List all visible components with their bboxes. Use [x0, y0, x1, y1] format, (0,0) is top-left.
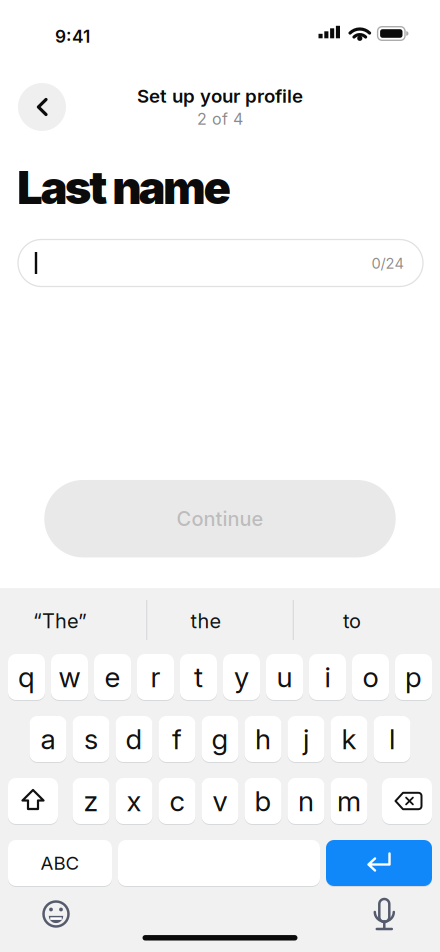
button[interactable]: i [309, 653, 346, 701]
staticText: u [276, 660, 292, 693]
staticText: n [298, 784, 314, 817]
button[interactable]: u [266, 653, 303, 701]
staticText: a [40, 722, 55, 755]
button[interactable]: the [136, 598, 276, 644]
staticText: Continue [176, 507, 263, 530]
button[interactable]: z [72, 777, 109, 825]
staticText: b [254, 784, 271, 817]
staticText: k [341, 722, 356, 755]
staticText: v [212, 784, 227, 817]
button[interactable]: ABC [8, 839, 112, 887]
staticText: p [405, 660, 422, 693]
button[interactable]: w [51, 653, 88, 701]
staticText: e [104, 660, 120, 693]
staticText: name [112, 161, 230, 214]
button[interactable]: d [115, 715, 152, 763]
staticText: 9:41 [55, 26, 90, 47]
staticText: to [343, 609, 361, 633]
button[interactable]: l [373, 715, 410, 763]
button[interactable]: n [287, 777, 324, 825]
button[interactable]: f [158, 715, 195, 763]
staticText: q [18, 660, 35, 693]
button[interactable]: o [352, 653, 389, 701]
staticText: g [211, 722, 228, 755]
button[interactable]: to [282, 598, 422, 644]
staticText: m [337, 784, 361, 817]
staticText: l [389, 722, 395, 755]
button[interactable]: m [330, 777, 367, 825]
button[interactable]: Dictate [367, 897, 401, 931]
staticText: 2 of 4 [197, 110, 243, 128]
button[interactable]: a [29, 715, 66, 763]
button[interactable]: c [158, 777, 195, 825]
staticText: “The” [33, 609, 87, 633]
button[interactable]: g [201, 715, 238, 763]
button[interactable]: Shift [8, 777, 58, 825]
staticText: the [190, 609, 221, 633]
button[interactable]: r [137, 653, 174, 701]
button[interactable]: Continue [44, 480, 396, 557]
staticText: f [172, 722, 182, 755]
staticText: i [324, 660, 330, 693]
staticText: c [169, 784, 184, 817]
button[interactable]: space [118, 839, 320, 887]
staticText: w [58, 660, 80, 693]
staticText: j [303, 722, 309, 755]
button[interactable]: p [395, 653, 432, 701]
staticText: y [234, 660, 249, 693]
button[interactable]: Emoji [40, 898, 71, 929]
button[interactable]: t [180, 653, 217, 701]
button[interactable]: x [115, 777, 152, 825]
button[interactable]: k [330, 715, 367, 763]
staticText: z [83, 784, 98, 817]
staticText: Set up your profile [137, 85, 303, 107]
staticText: t [194, 660, 203, 693]
button[interactable]: h [244, 715, 281, 763]
button[interactable]: Back [18, 83, 66, 131]
staticText: r [150, 660, 160, 693]
button[interactable]: e [94, 653, 131, 701]
button[interactable]: v [201, 777, 238, 825]
button[interactable]: “The” [0, 598, 130, 644]
button[interactable]: y [223, 653, 260, 701]
staticText: ABC [40, 852, 79, 874]
staticText: Last [17, 161, 107, 214]
staticText: d [125, 722, 142, 755]
button[interactable]: s [72, 715, 109, 763]
button[interactable]: q [8, 653, 45, 701]
staticText: s [84, 722, 98, 755]
staticText: o [362, 660, 378, 693]
staticText: h [255, 722, 271, 755]
button[interactable]: b [244, 777, 281, 825]
button[interactable]: Return [326, 839, 432, 887]
button[interactable]: Delete [382, 777, 432, 825]
button[interactable]: j [287, 715, 324, 763]
staticText: x [126, 784, 141, 817]
staticText: 0/24 [371, 255, 403, 272]
